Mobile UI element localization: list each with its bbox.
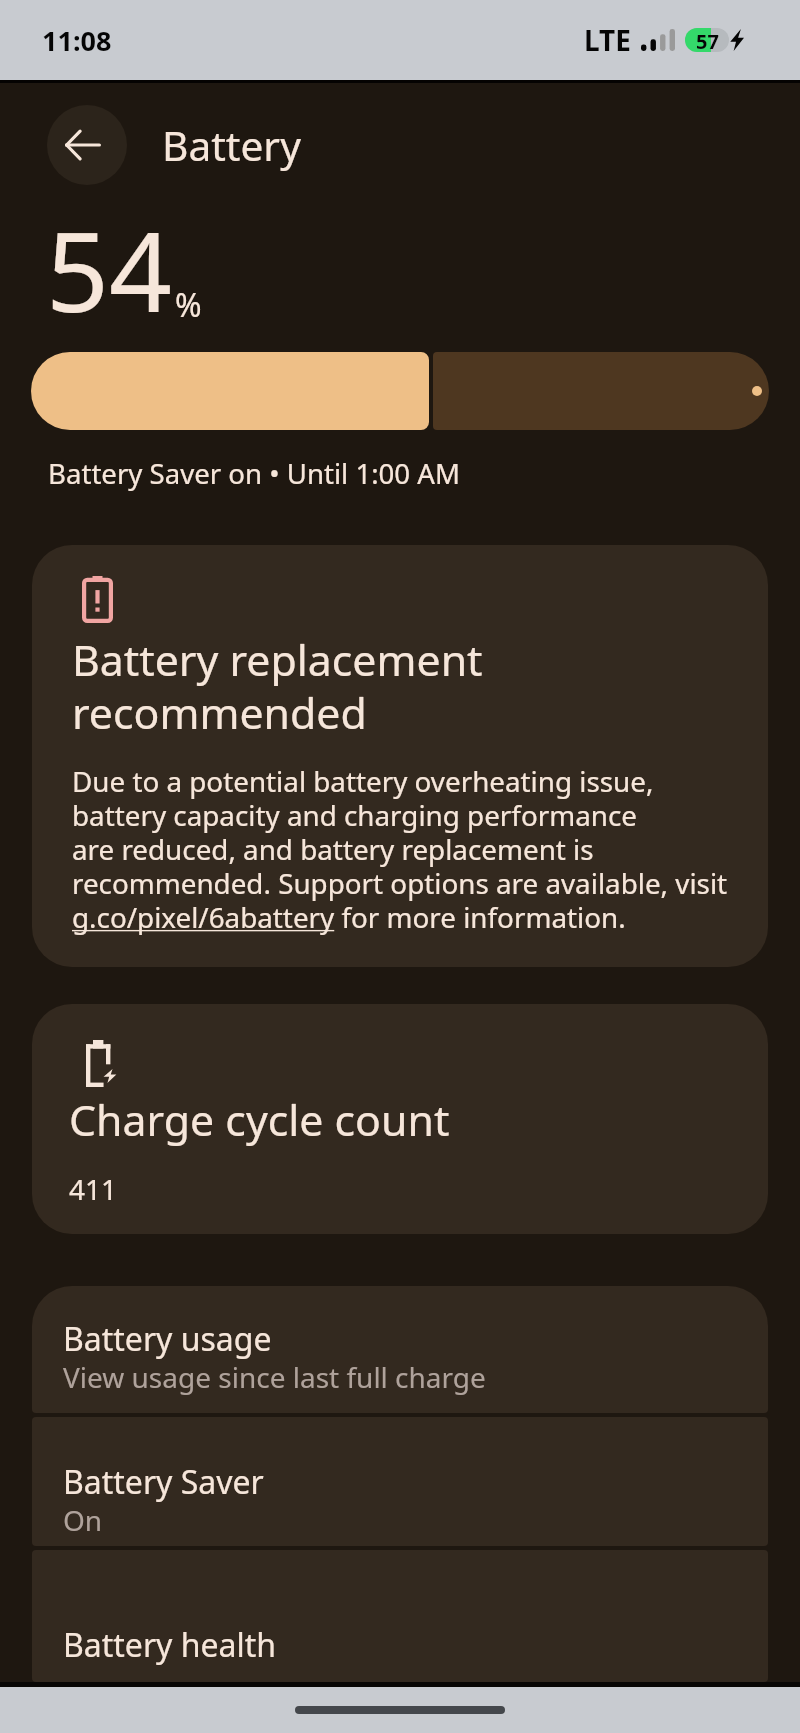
button[interactable]: Charge cycle count [32,1004,768,1234]
staticText: LTE [584,21,631,59]
staticText: Due to a potential battery overheating i… [72,762,768,936]
button[interactable]: Battery usage [32,1286,768,1413]
staticText: 54 [46,194,172,344]
staticText: Battery replacement recommended [72,630,483,742]
staticText: View usage since last full charge [63,1358,486,1396]
staticText: 411 [69,1170,118,1208]
button[interactable]: Battery Saver [32,1417,768,1546]
staticText: Battery Saver [63,1460,264,1504]
button[interactable]: Battery replacement recommended [32,545,768,967]
other: Mobile signal [641,29,675,51]
staticText: Battery health [63,1623,277,1667]
staticText: % [175,283,202,327]
button[interactable]: Back [47,105,127,185]
staticText: Battery usage [63,1317,272,1361]
staticText: On [63,1501,103,1539]
other: Charging [730,29,744,51]
button[interactable]: Battery health [32,1550,768,1682]
staticText: 57 [696,28,719,52]
staticText: Battery [162,118,301,173]
staticText: 11:08 [42,22,112,59]
staticText: Battery Saver on • Until 1:00 AM [48,454,460,492]
staticText: Charge cycle count [69,1090,450,1148]
